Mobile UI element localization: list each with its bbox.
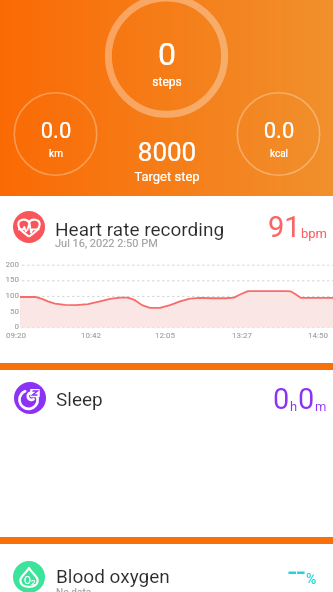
staticText: Target step [87,169,247,184]
staticText: 91 [268,210,301,244]
staticText: steps [87,75,247,89]
staticText: 10:42 [81,331,101,340]
button[interactable]: Heart rate [0,196,333,363]
staticText: 50 [0,307,19,316]
staticText: Blood oxygen [56,565,170,587]
other: Sleep [14,382,46,414]
staticText: 150 [0,275,19,284]
staticText: 0 [0,322,19,331]
staticText: 0 [298,382,315,416]
staticText: 13:27 [232,331,252,340]
staticText: Jul 16, 2022 2:50 PM [55,237,158,250]
staticText: 0.0 [199,118,333,144]
other: Blood oxygen [13,561,45,592]
staticText: 100 [0,291,19,300]
staticText: 12:05 [155,331,175,340]
staticText: % [306,571,317,587]
staticText: 0 [273,382,290,416]
staticText: 200 [0,260,19,269]
other: Heart rate [13,211,45,243]
staticText: h [290,399,298,414]
staticText: Sleep [56,388,103,410]
staticText: 0.0 [0,118,136,144]
staticText: 0 [87,35,247,73]
button[interactable]: Blood oxygen [0,544,333,592]
staticText: 14:50 [308,331,328,340]
staticText: O [24,575,31,587]
staticText: Heart rate recording [55,218,225,240]
staticText: m [315,399,327,414]
staticText: 2 [31,578,36,587]
staticText: bpm [301,226,327,241]
staticText: 09:20 [6,331,26,340]
button[interactable]: Sleep [0,370,333,537]
staticText: -- [288,553,306,589]
staticText: km [0,148,136,160]
staticText: 8000 [87,137,247,167]
button[interactable]: 0 [0,0,333,196]
staticText: No data [56,587,92,592]
staticText: kcal [199,148,333,160]
